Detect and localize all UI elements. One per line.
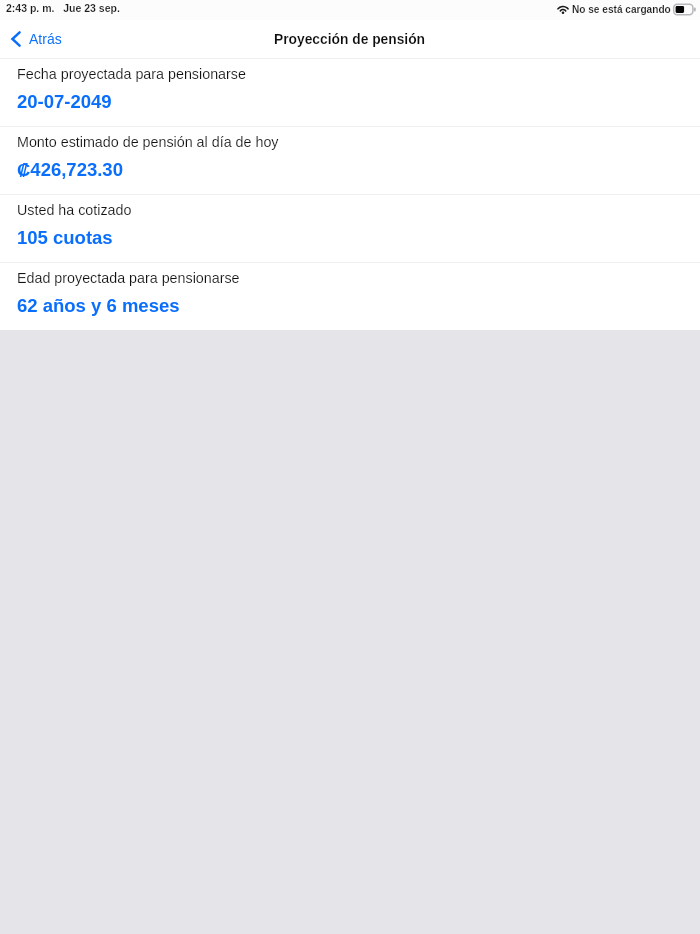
button[interactable]: Edad proyectada para pensionarse: [0, 263, 700, 330]
button[interactable]: Monto estimado de pensión al día de hoy: [0, 127, 700, 194]
staticText: 2:43 p. m. Jue 23 sep.: [6, 2, 120, 14]
button[interactable]: Atrás: [0, 26, 74, 52]
button[interactable]: Usted ha cotizado: [0, 195, 700, 262]
other: Wi-Fi: [555, 5, 570, 15]
staticText: 62 años y 6 meses: [17, 295, 180, 316]
staticText: Monto estimado de pensión al día de hoy: [17, 134, 279, 150]
staticText: ₡426,723.30: [17, 159, 123, 180]
other: Battery: [673, 3, 696, 16]
staticText: Fecha proyectada para pensionarse: [17, 66, 246, 82]
staticText: No se está cargando: [572, 4, 671, 15]
staticText: Atrás: [29, 31, 62, 47]
staticText: 105 cuotas: [17, 227, 113, 248]
staticText: 20-07-2049: [17, 91, 112, 112]
staticText: Edad proyectada para pensionarse: [17, 270, 240, 286]
staticText: Usted ha cotizado: [17, 202, 132, 218]
button[interactable]: Fecha proyectada para pensionarse: [0, 59, 700, 126]
staticText: Proyección de pensión: [274, 32, 426, 47]
